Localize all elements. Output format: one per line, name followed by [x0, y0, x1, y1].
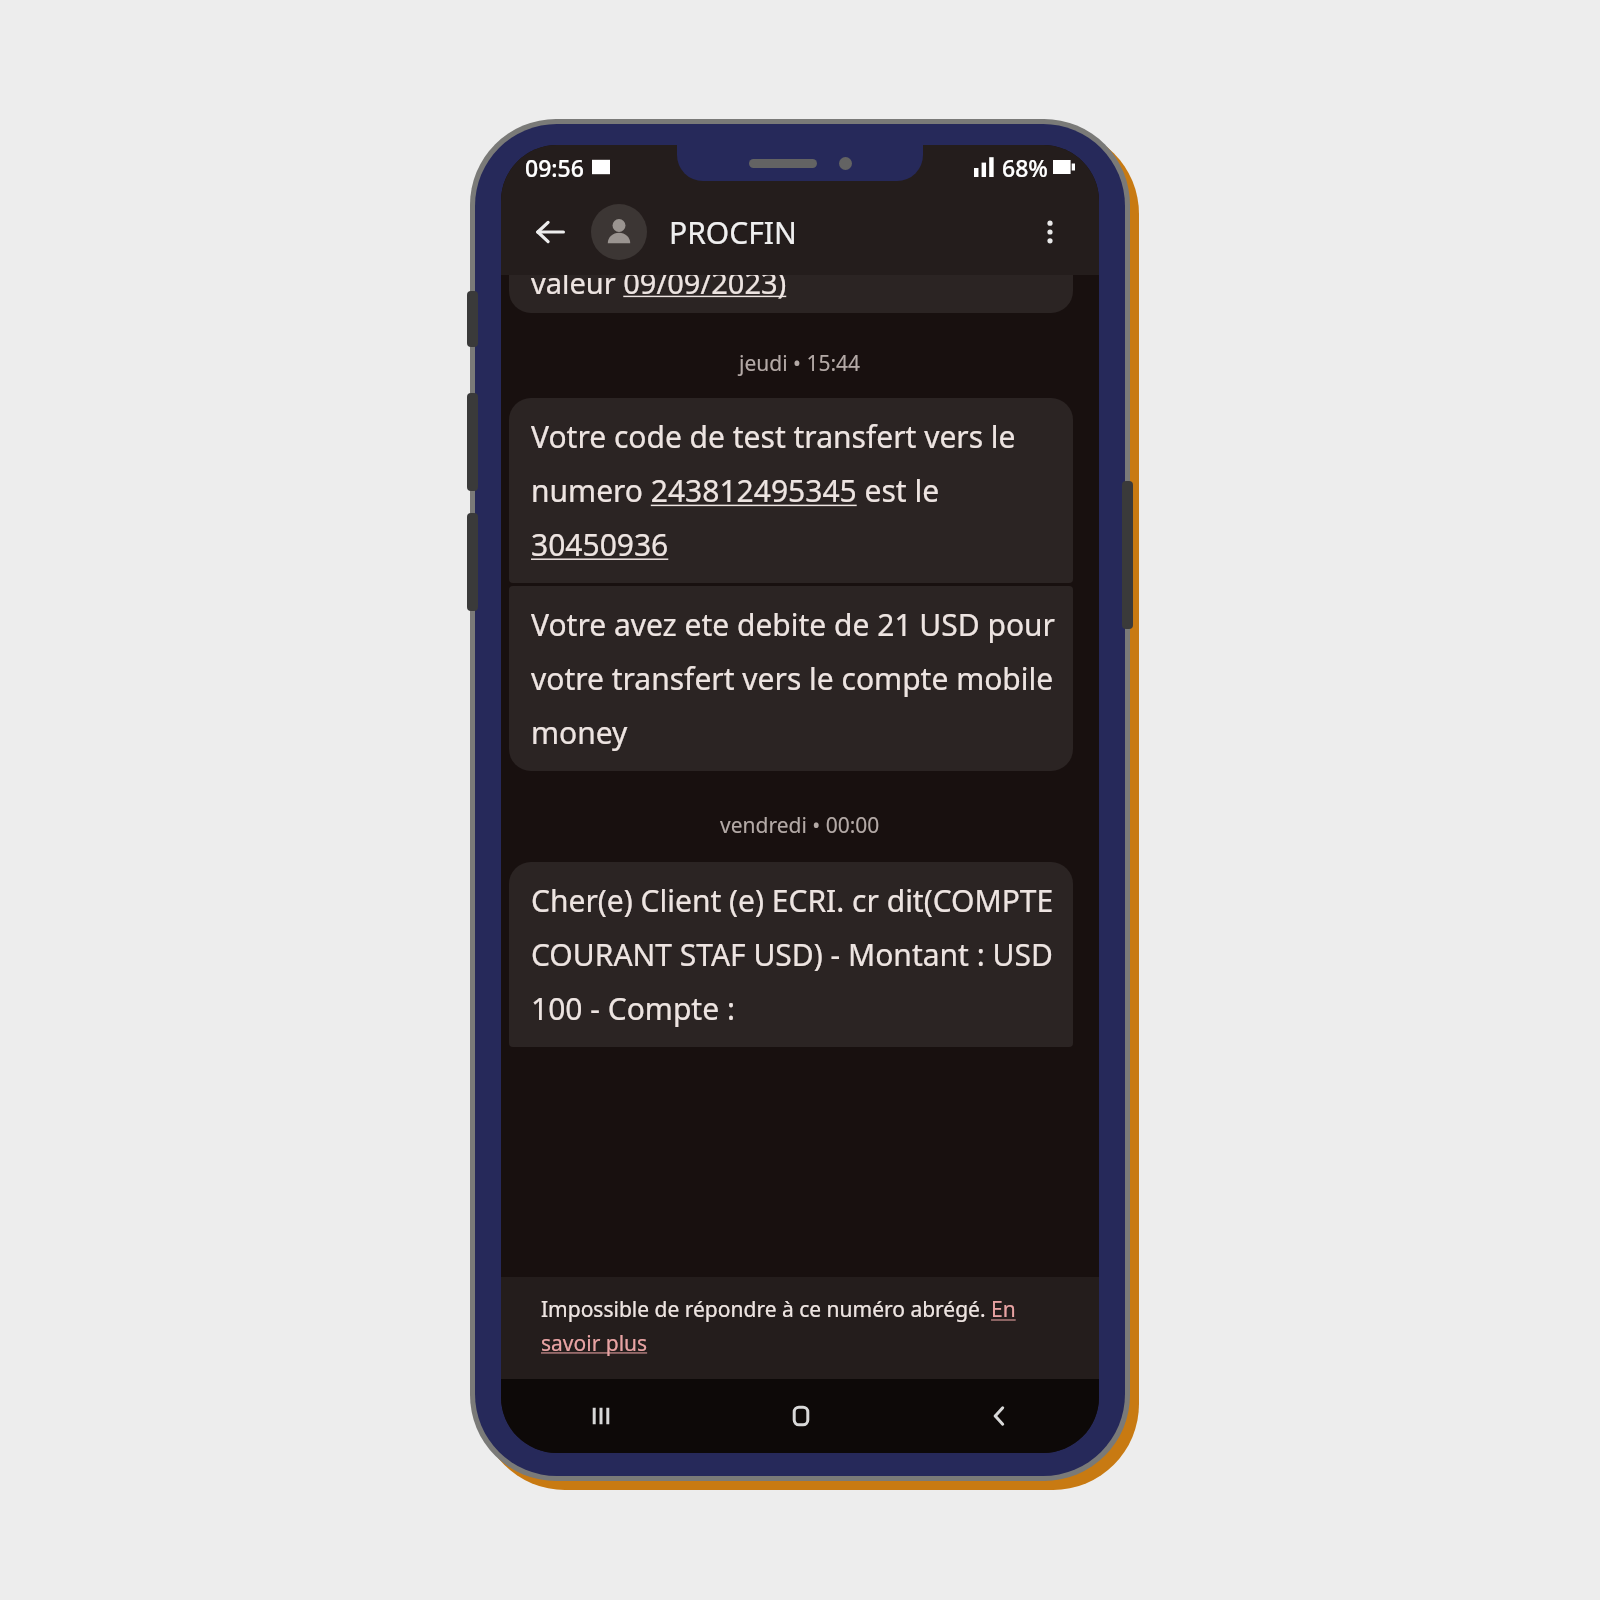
button[interactable]: Home	[701, 1379, 900, 1453]
button[interactable]: Back	[900, 1379, 1099, 1453]
staticText: 09:56	[525, 152, 584, 183]
staticText: Votre avez ete debite de 21 USD pour vot…	[531, 604, 1055, 753]
staticText: valeur 09/09/2023)	[531, 275, 787, 301]
staticText: vendredi • 00:00	[720, 811, 880, 840]
button[interactable]: Votre code de test transfert vers le num…	[509, 398, 1073, 583]
staticText: Impossible de répondre à ce numéro abrég…	[541, 1295, 1063, 1357]
staticText: 68%	[1002, 152, 1048, 183]
button[interactable]: More options	[1023, 205, 1077, 259]
button[interactable]: Votre avez ete debite de 21 USD pour vot…	[509, 586, 1073, 771]
button[interactable]: Back	[523, 205, 577, 259]
staticText: Cher(e) Client (e) ECRI. cr dit(COMPTE C…	[531, 880, 1055, 1029]
button[interactable]: Recents	[501, 1379, 701, 1453]
staticText: PROCFIN	[669, 212, 1023, 253]
button[interactable]: Cher(e) Client (e) ECRI. cr dit(COMPTE C…	[509, 862, 1073, 1047]
staticText: Votre code de test transfert vers le num…	[531, 416, 1055, 565]
staticText: jeudi • 15:44	[739, 349, 861, 378]
